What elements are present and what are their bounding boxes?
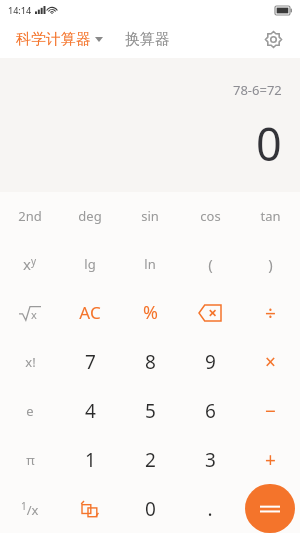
- staticText: π: [26, 451, 35, 469]
- staticText: 0: [145, 496, 156, 522]
- staticText: 换算器: [125, 30, 170, 49]
- staticText: 7: [85, 349, 96, 375]
- button[interactable]: 0: [120, 484, 180, 533]
- staticText: xy: [23, 254, 37, 274]
- staticText: 8: [145, 349, 156, 375]
- staticText: ÷: [265, 300, 276, 326]
- button[interactable]: 1: [60, 435, 120, 484]
- button[interactable]: %: [120, 288, 180, 337]
- staticText: 1/x: [21, 499, 39, 519]
- staticText: 1: [85, 447, 96, 473]
- staticText: 4: [85, 398, 96, 424]
- button[interactable]: −: [240, 386, 300, 435]
- button[interactable]: x!: [0, 337, 60, 386]
- button[interactable]: Equals: [245, 484, 295, 533]
- staticText: %: [143, 300, 158, 325]
- button[interactable]: π: [0, 435, 60, 484]
- button[interactable]: +: [240, 435, 300, 484]
- button[interactable]: Reciprocal: [0, 484, 60, 533]
- staticText: .: [207, 496, 213, 522]
- staticText: 2: [145, 447, 156, 473]
- staticText: 3: [205, 447, 216, 473]
- staticText: (: [208, 254, 213, 274]
- staticText: x!: [25, 353, 36, 371]
- staticText: AC: [79, 301, 101, 324]
- button[interactable]: 3: [180, 435, 240, 484]
- staticText: x: [31, 307, 37, 322]
- staticText: e: [26, 402, 34, 420]
- button[interactable]: 2: [120, 435, 180, 484]
- staticText: 科学计算器: [16, 30, 91, 49]
- staticText: tan: [260, 207, 281, 225]
- button[interactable]: 7: [60, 337, 120, 386]
- button[interactable]: Equals: [240, 484, 300, 533]
- button[interactable]: 科学计算器: [14, 26, 105, 53]
- staticText: −: [265, 398, 276, 424]
- button[interactable]: 2nd: [0, 192, 60, 240]
- button[interactable]: e: [0, 386, 60, 435]
- button[interactable]: ÷: [240, 288, 300, 337]
- staticText: 0: [256, 113, 282, 174]
- button[interactable]: ×: [240, 337, 300, 386]
- staticText: 9: [205, 349, 216, 375]
- staticText: cos: [200, 207, 221, 225]
- staticText: ln: [144, 255, 156, 273]
- button[interactable]: 换算器: [123, 26, 172, 53]
- button[interactable]: cos: [180, 192, 240, 240]
- staticText: lg: [84, 255, 96, 273]
- staticText: 14:14: [8, 4, 32, 16]
- button[interactable]: tan: [240, 192, 300, 240]
- button[interactable]: sin: [120, 192, 180, 240]
- button[interactable]: lg: [60, 240, 120, 288]
- staticText: 5: [145, 398, 156, 424]
- button[interactable]: Square root: [0, 288, 60, 337]
- button[interactable]: 5: [120, 386, 180, 435]
- button[interactable]: deg: [60, 192, 120, 240]
- button[interactable]: Settings: [258, 24, 288, 54]
- button[interactable]: Power: [0, 240, 60, 288]
- button[interactable]: AC: [60, 288, 120, 337]
- button[interactable]: 6: [180, 386, 240, 435]
- button[interactable]: ): [240, 240, 300, 288]
- button[interactable]: ln: [120, 240, 180, 288]
- button[interactable]: 4: [60, 386, 120, 435]
- button[interactable]: 9: [180, 337, 240, 386]
- staticText: ×: [265, 349, 276, 375]
- staticText: 2nd: [18, 207, 42, 225]
- button[interactable]: Convert: [60, 484, 120, 533]
- staticText: +: [265, 447, 276, 473]
- staticText: ): [268, 254, 273, 274]
- staticText: 6: [205, 398, 216, 424]
- staticText: deg: [78, 207, 102, 225]
- button[interactable]: 8: [120, 337, 180, 386]
- button[interactable]: (: [180, 240, 240, 288]
- button[interactable]: .: [180, 484, 240, 533]
- button[interactable]: Backspace: [180, 288, 240, 337]
- staticText: sin: [141, 207, 159, 225]
- staticText: 78-6=72: [233, 81, 282, 99]
